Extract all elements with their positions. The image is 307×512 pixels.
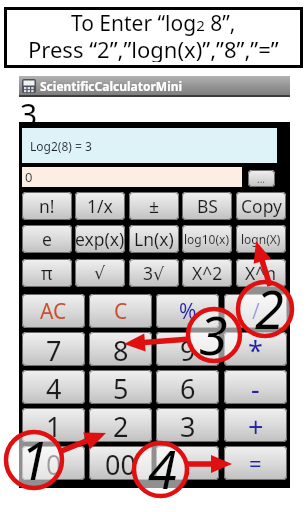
button[interactable]: √ <box>75 259 125 287</box>
button[interactable]: e <box>22 225 72 253</box>
button[interactable]: ± <box>129 192 179 220</box>
staticText: / <box>252 297 260 326</box>
staticText: 9 <box>180 332 196 366</box>
staticText: Log2(8) = 3 <box>30 138 92 154</box>
staticText: √ <box>94 263 106 283</box>
button[interactable]: logn(X) <box>236 225 286 253</box>
button[interactable]: BS <box>182 192 232 220</box>
staticText: π <box>41 261 53 285</box>
staticText: * <box>248 332 263 366</box>
staticText: n! <box>39 194 55 218</box>
staticText: To Enter “log2 8”, <box>71 9 236 37</box>
button[interactable] <box>19 76 290 97</box>
staticText: log10(x) <box>184 231 230 247</box>
button[interactable]: 8 <box>89 332 152 366</box>
button[interactable]: log10(x) <box>182 225 232 253</box>
staticText: - <box>251 370 260 404</box>
staticText: C <box>114 297 128 326</box>
button[interactable]: 4 <box>22 370 85 404</box>
button[interactable]: C <box>89 294 152 328</box>
button[interactable]: X^2 <box>182 259 232 287</box>
button[interactable]: . <box>156 446 219 480</box>
button[interactable]: 6 <box>156 370 219 404</box>
button[interactable]: + <box>224 408 287 442</box>
button[interactable]: = <box>224 446 287 480</box>
button[interactable]: * <box>224 332 287 366</box>
staticText: 3√ <box>143 261 165 285</box>
staticText: 00 <box>105 446 136 480</box>
button[interactable]: 00 <box>89 446 152 480</box>
button[interactable]: 9 <box>156 332 219 366</box>
button[interactable]: π <box>22 259 72 287</box>
staticText: Ln(x) <box>134 227 174 251</box>
button[interactable]: 0 <box>22 446 85 480</box>
staticText: 4 <box>148 433 177 503</box>
staticText: 7 <box>46 332 62 366</box>
staticText: 4 <box>46 370 62 404</box>
button[interactable]: ... <box>248 170 275 187</box>
staticText: 3 <box>20 94 38 122</box>
button[interactable]: % <box>156 294 219 328</box>
staticText: X^2 <box>192 261 223 285</box>
staticText: 3 <box>180 408 196 442</box>
button[interactable]: Log2(8) = 3 <box>22 128 277 163</box>
staticText: exp(x) <box>75 227 125 251</box>
button[interactable]: 3√ <box>129 259 179 287</box>
button[interactable]: 2 <box>89 408 152 442</box>
staticText: 3 <box>199 299 228 369</box>
staticText: Press “2”,”logn(x)”,”8”,”=” <box>28 34 279 62</box>
staticText: % <box>179 297 197 326</box>
button[interactable]: 3 <box>156 408 219 442</box>
staticText: ± <box>149 194 160 218</box>
staticText: 6 <box>180 370 196 404</box>
button[interactable]: Ln(x) <box>129 225 179 253</box>
staticText: 1 <box>20 424 49 494</box>
staticText: 0 <box>46 446 62 480</box>
button[interactable]: 1/x <box>75 192 125 220</box>
staticText: 1/x <box>87 194 113 218</box>
staticText: Copy <box>241 194 282 218</box>
button[interactable]: 7 <box>22 332 85 366</box>
button[interactable]: AC <box>22 294 85 328</box>
staticText: . <box>184 446 192 480</box>
staticText: 5 <box>113 370 129 404</box>
button[interactable]: 1 <box>22 408 85 442</box>
staticText: X^n <box>245 261 277 285</box>
staticText: logn(X) <box>241 231 281 247</box>
button[interactable]: 0 <box>22 167 242 187</box>
staticText: AC <box>40 297 67 326</box>
staticText: BS <box>197 194 218 218</box>
button[interactable]: - <box>224 370 287 404</box>
button[interactable]: Copy <box>236 192 286 220</box>
staticText: 8 <box>113 332 129 366</box>
staticText: 1 <box>46 408 62 442</box>
button[interactable]: X^n <box>236 259 286 287</box>
staticText: ScientificCalculatorMini <box>40 78 183 94</box>
button[interactable]: exp(x) <box>75 225 125 253</box>
staticText: 0 <box>25 168 33 186</box>
staticText: e <box>42 227 52 251</box>
staticText: + <box>248 408 264 442</box>
button[interactable]: n! <box>22 192 72 220</box>
button[interactable]: 5 <box>89 370 152 404</box>
staticText: = <box>249 448 262 478</box>
button[interactable]: / <box>224 294 287 328</box>
staticText: 2 <box>255 273 284 343</box>
staticText: 2 <box>113 408 129 442</box>
staticText: ... <box>257 172 266 186</box>
